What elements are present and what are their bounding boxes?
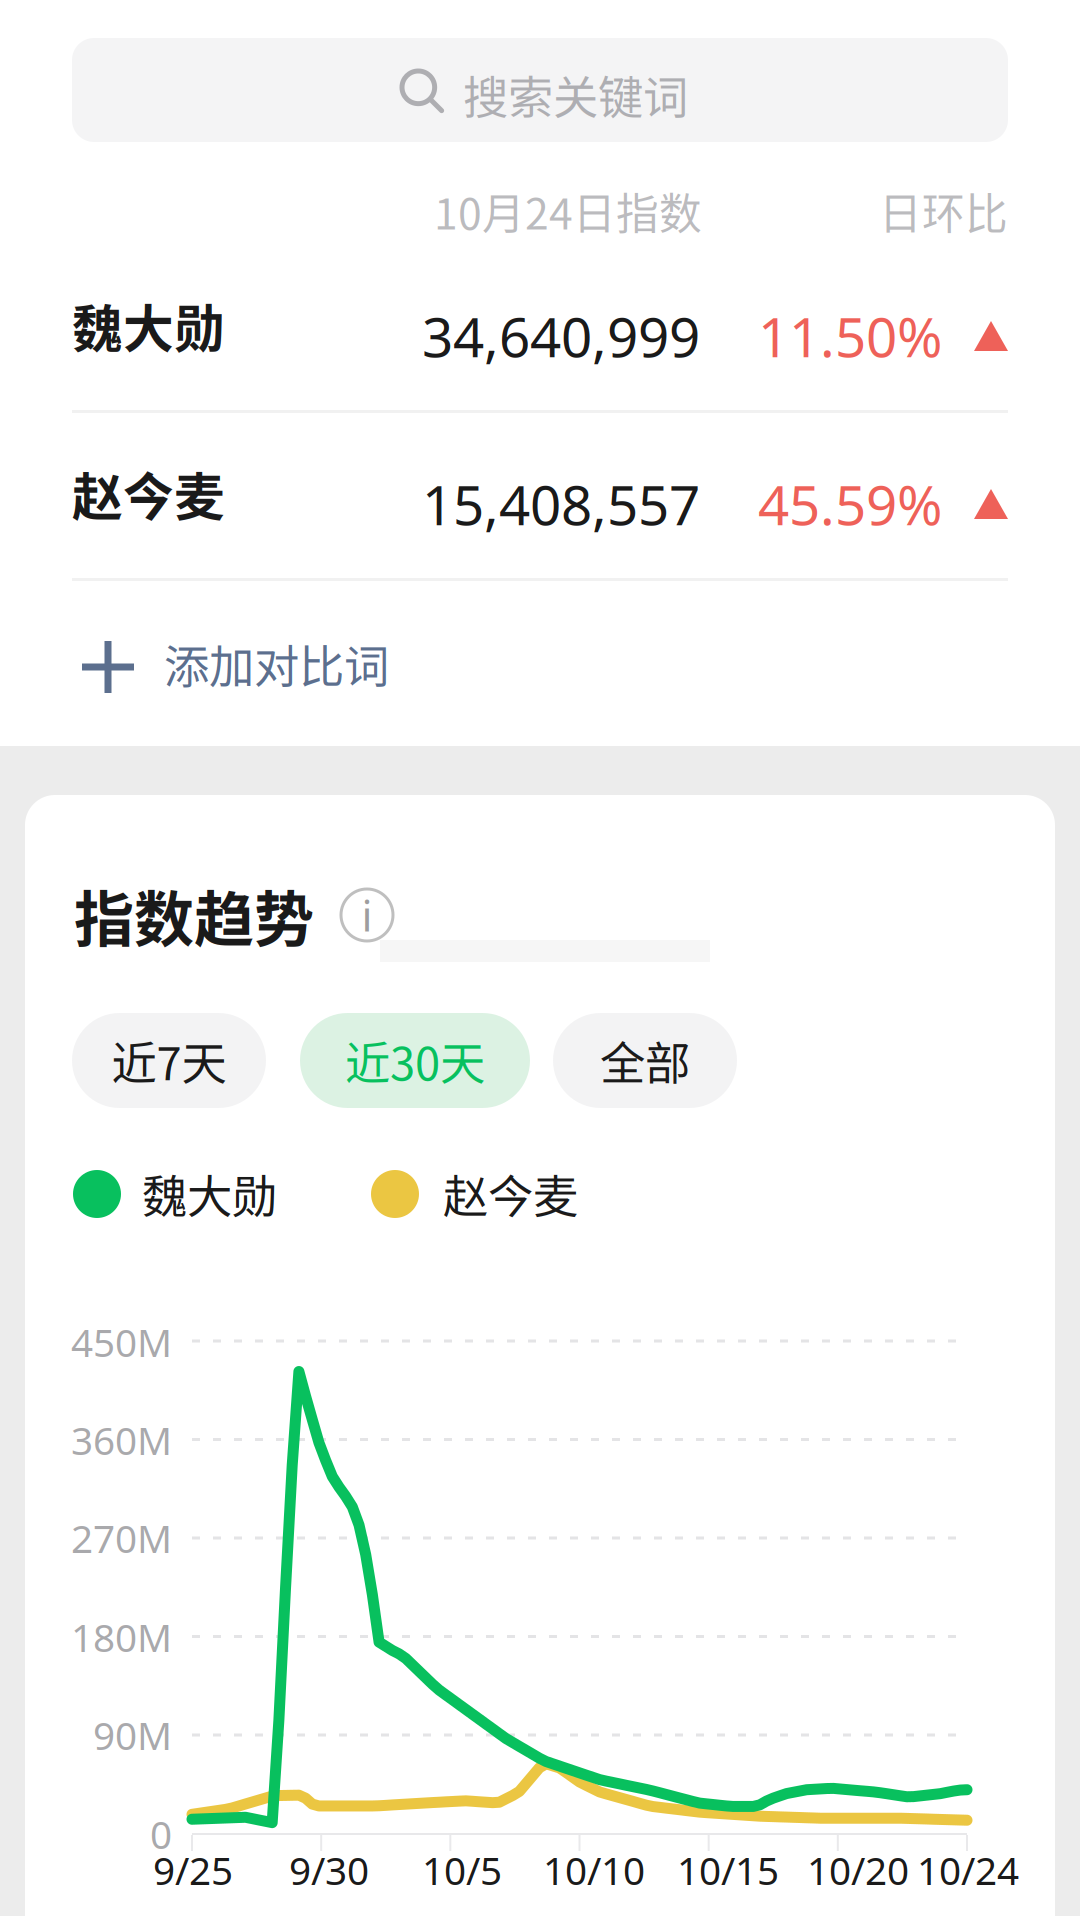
- staticText: 10/24: [917, 1844, 1019, 1896]
- staticText: 9/30: [289, 1844, 369, 1896]
- staticText: 10月24日指数: [434, 180, 702, 242]
- staticText: 10/5: [422, 1844, 502, 1896]
- button[interactable]: 赵今麦: [0, 430, 1080, 578]
- staticText: 11.50%: [758, 300, 942, 372]
- staticText: 270M: [71, 1512, 172, 1564]
- staticText: 34,640,999: [422, 300, 700, 372]
- button[interactable]: 搜索关键词: [72, 38, 1008, 142]
- staticText: 15,408,557: [422, 468, 700, 540]
- staticText: 搜索关键词: [463, 62, 688, 128]
- button[interactable]: 添加对比词: [0, 600, 1080, 740]
- staticText: 45.59%: [758, 468, 942, 540]
- staticText: 90M: [93, 1709, 172, 1761]
- staticText: 近7天: [111, 1028, 226, 1093]
- staticText: 450M: [71, 1316, 172, 1368]
- button[interactable]: 全部: [553, 1013, 737, 1108]
- staticText: 10/20: [807, 1844, 909, 1896]
- staticText: 魏大勋: [142, 1161, 277, 1227]
- staticText: 赵今麦: [443, 1161, 578, 1227]
- staticText: 全部: [600, 1028, 690, 1093]
- staticText: 赵今麦: [72, 457, 225, 530]
- staticText: 日环比: [879, 180, 1008, 242]
- button[interactable]: 近7天: [72, 1013, 266, 1108]
- staticText: 180M: [71, 1611, 172, 1663]
- staticText: 0: [150, 1808, 172, 1860]
- staticText: 指数趋势: [74, 872, 314, 959]
- staticText: i: [361, 887, 372, 943]
- staticText: 添加对比词: [164, 631, 389, 697]
- button[interactable]: 魏大勋: [0, 262, 1080, 410]
- button[interactable]: 近30天: [300, 1013, 530, 1108]
- staticText: 近30天: [345, 1028, 485, 1093]
- staticText: 360M: [71, 1414, 172, 1466]
- staticText: 9/25: [153, 1844, 233, 1896]
- staticText: 魏大勋: [72, 289, 225, 362]
- staticText: 10/10: [543, 1844, 645, 1896]
- staticText: 10/15: [677, 1844, 779, 1896]
